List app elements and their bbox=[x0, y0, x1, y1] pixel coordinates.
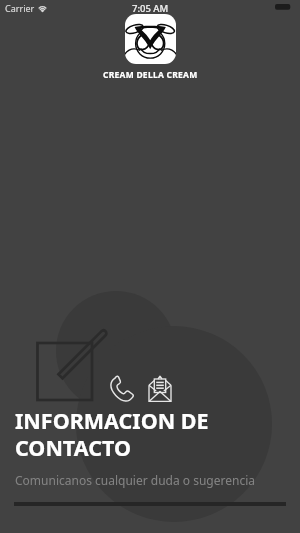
staticText: CREAM DELLA CREAM bbox=[103, 69, 198, 81]
button[interactable]: Cream Della Cream bbox=[125, 14, 176, 64]
button[interactable]: Escribir mensaje bbox=[33, 325, 113, 405]
button[interactable]: Enviar correo bbox=[147, 374, 176, 405]
staticText: 7:05 AM bbox=[132, 2, 169, 15]
staticText: INFORMACION DE CONTACTO bbox=[15, 406, 209, 462]
staticText: Carrier bbox=[5, 2, 35, 14]
button[interactable]: Llamar bbox=[108, 374, 138, 405]
staticText: Comunicanos cualquier duda o sugerencia bbox=[15, 472, 255, 488]
